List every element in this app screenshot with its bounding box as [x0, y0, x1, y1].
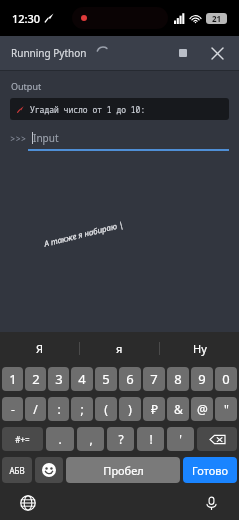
button[interactable]: 4	[71, 367, 93, 391]
staticText: ;	[80, 401, 84, 417]
staticText: :	[57, 401, 61, 417]
staticText: 4	[78, 370, 86, 388]
button[interactable]: Input	[32, 130, 229, 146]
button[interactable]: @	[191, 397, 213, 421]
staticText: Я	[36, 341, 44, 356]
staticText: Output	[11, 80, 42, 92]
staticText: 8	[174, 370, 182, 388]
button[interactable]: Stop	[169, 39, 197, 67]
staticText: 6	[126, 370, 134, 388]
staticText: АБВ	[9, 465, 25, 476]
staticText: -	[11, 401, 15, 417]
button[interactable]: АБВ	[2, 457, 32, 483]
staticText: 3	[55, 370, 63, 388]
button[interactable]: Пробел	[66, 457, 180, 483]
button[interactable]: ,	[77, 427, 104, 451]
staticText: @	[197, 401, 208, 417]
button[interactable]: )	[119, 397, 141, 421]
button[interactable]: "	[215, 397, 237, 421]
button[interactable]: Emoji	[35, 457, 63, 483]
staticText: 21	[212, 13, 222, 24]
staticText: Пробел	[103, 463, 144, 478]
staticText: я	[116, 341, 123, 356]
staticText: /	[33, 401, 38, 417]
staticText: ,	[89, 431, 93, 447]
button[interactable]: !	[137, 427, 164, 451]
staticText: Input	[33, 131, 59, 145]
button[interactable]: ₽	[143, 397, 165, 421]
staticText: Угадай число от 1 до 10:	[30, 104, 146, 115]
button[interactable]: 6	[119, 367, 141, 391]
staticText: Running Python	[11, 46, 87, 60]
button[interactable]: :	[48, 397, 69, 421]
staticText: 12:30	[12, 11, 41, 26]
button[interactable]: 2	[25, 367, 46, 391]
staticText: Готово	[192, 463, 228, 478]
staticText: &	[174, 401, 183, 417]
button[interactable]: 8	[167, 367, 189, 391]
staticText: 7	[150, 370, 158, 388]
button[interactable]: Backspace	[197, 427, 237, 451]
button[interactable]: Готово	[183, 457, 237, 483]
staticText: 5	[102, 370, 110, 388]
staticText: )	[128, 401, 132, 417]
staticText: ?	[118, 431, 124, 447]
button[interactable]: 3	[48, 367, 69, 391]
staticText: 0	[222, 370, 230, 388]
button[interactable]: Voice input	[199, 491, 223, 515]
button[interactable]: ?	[107, 427, 134, 451]
button[interactable]: Я	[0, 332, 79, 364]
staticText: А также я набираю |	[43, 218, 125, 249]
button[interactable]: 1	[2, 367, 23, 391]
button[interactable]: 7	[143, 367, 165, 391]
staticText: Ну	[193, 341, 207, 356]
button[interactable]: (	[95, 397, 117, 421]
staticText: .	[58, 431, 62, 447]
staticText: 1	[9, 370, 17, 388]
button[interactable]: 5	[95, 367, 117, 391]
staticText: 9	[198, 370, 206, 388]
button[interactable]: &	[167, 397, 189, 421]
button[interactable]: '	[167, 427, 194, 451]
staticText: (	[104, 401, 108, 417]
button[interactable]: #+=	[2, 427, 43, 451]
button[interactable]: Close	[203, 39, 231, 67]
button[interactable]: 0	[215, 367, 237, 391]
button[interactable]: -	[2, 397, 23, 421]
button[interactable]: .	[46, 427, 74, 451]
button[interactable]: 9	[191, 367, 213, 391]
staticText: #+=	[15, 434, 30, 445]
staticText: "	[224, 401, 229, 417]
button[interactable]: ;	[71, 397, 93, 421]
button[interactable]: Ну	[160, 332, 239, 364]
button[interactable]: /	[25, 397, 46, 421]
staticText: ₽	[151, 401, 158, 417]
staticText: !	[149, 431, 153, 447]
staticText: >>>	[10, 132, 27, 144]
button[interactable]: я	[80, 332, 159, 364]
button[interactable]: Change language	[16, 491, 40, 515]
staticText: 2	[32, 370, 40, 388]
staticText: '	[179, 431, 182, 447]
